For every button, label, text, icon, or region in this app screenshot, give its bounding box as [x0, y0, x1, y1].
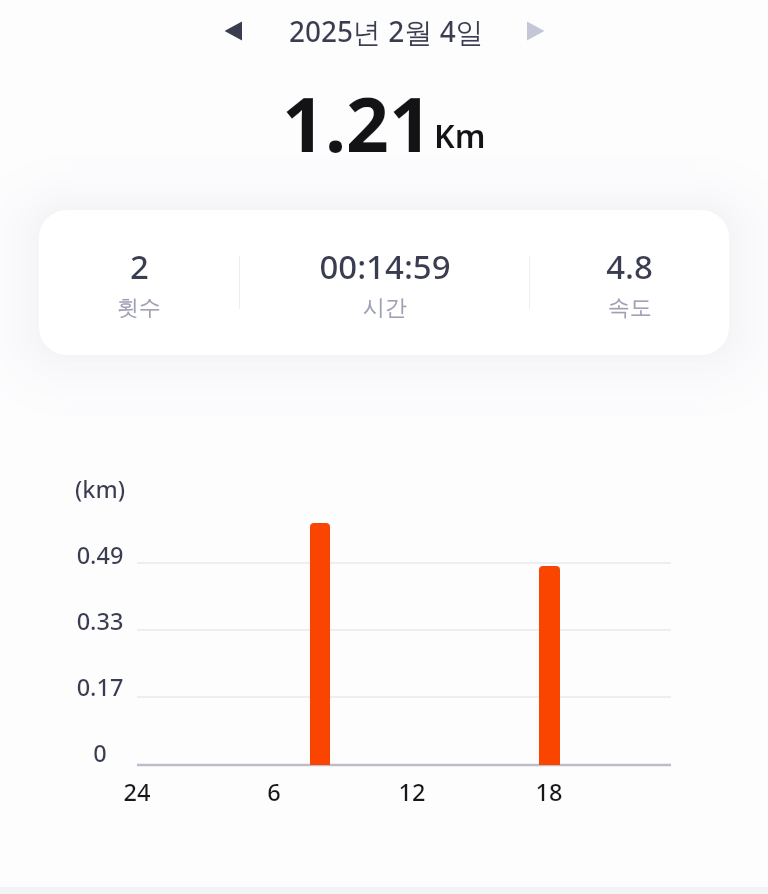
button[interactable]: Next day [511, 8, 557, 54]
staticText: 12 [362, 776, 462, 808]
staticText: 0.49 [40, 539, 160, 571]
staticText: 2 [130, 244, 149, 289]
staticText: 18 [499, 776, 599, 808]
staticText: 속도 [608, 294, 652, 322]
staticText: Km [434, 114, 486, 158]
staticText: 00:14:59 [319, 244, 451, 289]
button[interactable]: 2 [39, 210, 239, 355]
button[interactable]: Previous day [211, 8, 257, 54]
staticText: 6 [224, 776, 324, 808]
staticText: 0.17 [40, 671, 160, 703]
staticText: 1.21 [282, 72, 432, 174]
staticText: (km) [40, 473, 160, 505]
button[interactable]: 4.8 [530, 210, 729, 355]
staticText: 0.33 [40, 605, 160, 637]
staticText: 0 [40, 737, 160, 769]
staticText: 24 [87, 776, 187, 808]
staticText: 시간 [363, 294, 407, 322]
button[interactable]: 00:14:59 [240, 210, 529, 355]
staticText: 횟수 [117, 294, 161, 322]
staticText: 2025년 2월 4일 [289, 12, 484, 50]
staticText: 4.8 [606, 244, 653, 289]
